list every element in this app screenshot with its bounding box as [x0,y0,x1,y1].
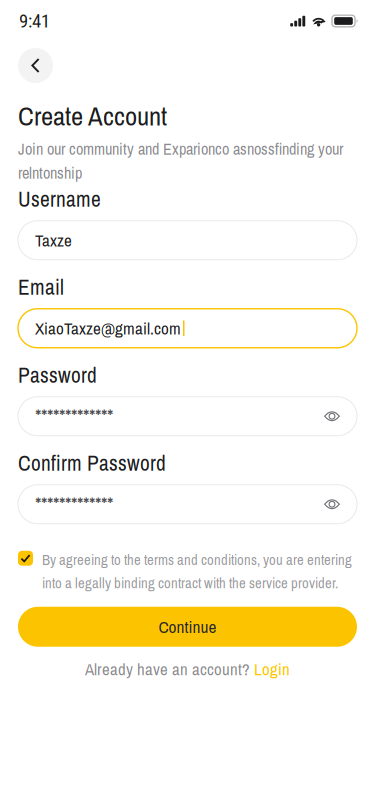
staticText: Confirm Password [18,449,166,477]
staticText: ************* [35,491,113,518]
staticText: By agreeing to the terms and conditions,… [42,550,352,593]
button[interactable]: Show password [315,399,349,433]
button[interactable]: Already have an account? [0,653,375,685]
staticText: ************* [35,403,113,430]
staticText: Already have an account? [85,658,250,680]
staticText: Password [18,361,97,389]
button[interactable]: Back [18,48,53,83]
button[interactable]: By agreeing to the terms and conditions,… [0,550,375,593]
staticText: Login [254,658,290,680]
staticText: Username [18,185,101,213]
staticText: Taxze [35,229,72,252]
staticText: Continue [158,615,216,638]
staticText: Email [18,273,64,301]
staticText: XiaoTaxze@gmail.com [35,317,181,340]
button[interactable]: Continue [18,607,357,647]
staticText: 9:41 [19,10,50,32]
button[interactable]: Show password [315,487,349,521]
staticText: Create Account [18,98,167,134]
staticText: Join our community and Exparionco asnoss… [18,138,343,184]
